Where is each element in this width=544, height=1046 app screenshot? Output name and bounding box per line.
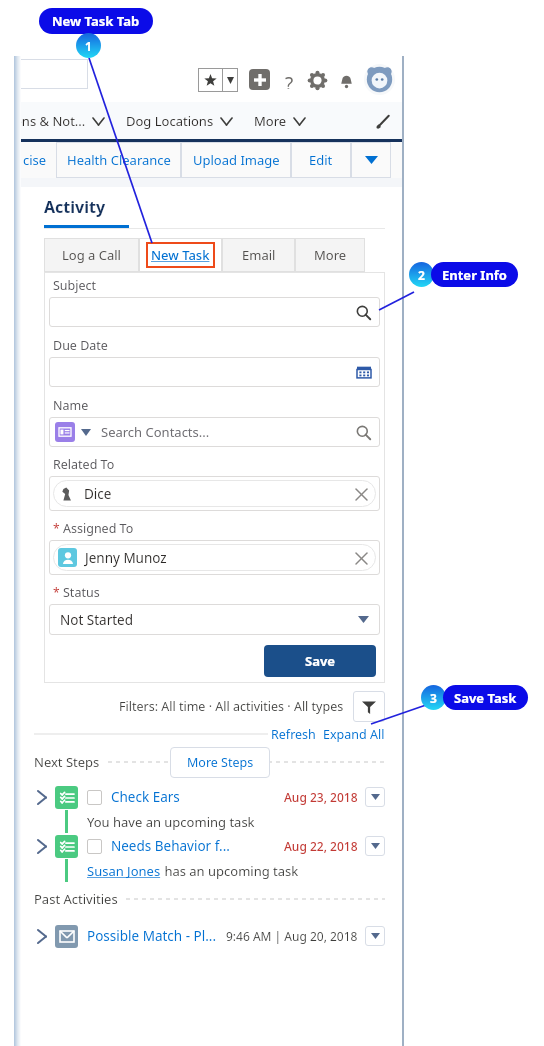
button[interactable]: Enter Info — [442, 262, 507, 287]
staticText: Next Steps — [34, 753, 100, 771]
staticText: Aug 22, 2018 — [284, 838, 358, 854]
staticText: Not Started — [60, 611, 134, 629]
button[interactable]: Dog Locations — [126, 112, 232, 130]
button[interactable]: Jenny Munoz — [58, 544, 376, 571]
button[interactable]: Email — [222, 238, 295, 272]
button[interactable]: Row actions — [365, 787, 385, 807]
staticText: * — [53, 584, 63, 600]
button[interactable]: Search Contacts... — [49, 417, 380, 447]
staticText: Upload Image — [193, 151, 280, 169]
button[interactable]: Add — [249, 69, 270, 90]
button[interactable]: Notifications — [337, 71, 355, 89]
button[interactable]: Setup — [308, 71, 326, 89]
button[interactable]: Expand All — [323, 726, 385, 743]
button[interactable]: Health Clearance — [56, 142, 181, 178]
button[interactable]: Complete task — [87, 790, 102, 805]
staticText: ons & Not... — [14, 112, 86, 130]
staticText: Search Contacts... — [101, 423, 210, 441]
button[interactable]: Upload Image — [181, 142, 291, 178]
staticText: Assigned To — [63, 520, 134, 537]
staticText: Save Task — [454, 689, 517, 707]
staticText: Log a Call — [62, 246, 121, 264]
button[interactable]: Filters: All time · All activities · All… — [119, 698, 344, 715]
staticText: 3 — [430, 690, 437, 706]
button[interactable]: Search — [14, 59, 88, 89]
button[interactable]: New Task — [139, 238, 222, 272]
staticText: cise — [23, 151, 47, 169]
button[interactable]: Remove Jenny Munoz — [350, 547, 372, 569]
button[interactable]: Row actions — [365, 926, 385, 946]
staticText: You have an upcoming task — [87, 813, 255, 831]
staticText: 1 — [85, 38, 92, 54]
staticText: Email — [242, 246, 276, 264]
button[interactable]: Expand — [34, 928, 50, 944]
staticText: Name — [53, 397, 89, 414]
staticText: Health Clearance — [67, 151, 171, 169]
staticText: Due Date — [53, 337, 108, 354]
button[interactable]: Row actions — [365, 836, 385, 856]
button[interactable]: More Steps — [170, 747, 270, 778]
button[interactable]: Remove Dice — [350, 483, 372, 505]
staticText: has an upcoming task — [161, 862, 299, 880]
staticText: Past Activities — [34, 890, 118, 908]
staticText: 2 — [418, 267, 425, 283]
button[interactable]: Activity — [44, 196, 106, 218]
button[interactable]: Not Started — [49, 604, 380, 635]
staticText: ? — [285, 71, 294, 89]
button[interactable]: Needs Behavior f... — [111, 837, 230, 855]
button[interactable]: Possible Match - Pl... — [87, 927, 217, 945]
button[interactable]: Expand — [34, 833, 385, 859]
staticText: Dice — [84, 485, 112, 503]
staticText: New Task — [151, 246, 210, 264]
button[interactable]: More — [254, 112, 305, 130]
button[interactable]: Edit page — [373, 111, 393, 131]
staticText: More — [314, 246, 347, 264]
staticText: Related To — [53, 456, 115, 473]
button[interactable]: Profile — [364, 64, 395, 95]
staticText: More — [254, 112, 287, 130]
staticText: * — [53, 520, 63, 536]
button[interactable]: ons & Not... — [14, 112, 104, 130]
staticText: Subject — [53, 277, 97, 294]
button[interactable]: Expand — [34, 789, 50, 805]
button[interactable]: Refresh — [271, 726, 316, 743]
button[interactable]: Help — [280, 71, 298, 89]
staticText: More Steps — [187, 754, 254, 771]
button[interactable] — [49, 357, 380, 387]
button[interactable]: New Task Tab — [52, 8, 140, 34]
button[interactable]: Edit — [291, 142, 351, 178]
button[interactable]: Log a Call — [44, 238, 139, 272]
staticText: Status — [63, 584, 100, 601]
button[interactable]: Expand — [34, 922, 385, 950]
button[interactable]: Save — [264, 645, 376, 677]
staticText: Save — [305, 652, 336, 670]
button[interactable]: Expand — [34, 784, 385, 810]
button[interactable]: Dice — [58, 480, 376, 507]
staticText: Edit — [309, 151, 333, 169]
button[interactable]: More actions — [351, 142, 391, 178]
button[interactable]: More — [295, 238, 365, 272]
button[interactable]: Complete task — [87, 839, 102, 854]
button[interactable]: Check Ears — [111, 788, 180, 806]
button[interactable]: Favorites — [198, 68, 238, 92]
button[interactable] — [49, 297, 380, 327]
button[interactable]: Save Task — [454, 685, 517, 710]
staticText: Enter Info — [442, 266, 507, 284]
staticText: Jenny Munoz — [85, 549, 167, 567]
button[interactable]: Susan Jones — [87, 862, 161, 880]
staticText: Aug 23, 2018 — [284, 789, 358, 805]
button[interactable]: Expand — [34, 838, 50, 854]
button[interactable]: cise — [14, 142, 56, 178]
button[interactable]: Filter — [353, 691, 385, 722]
staticText: Dog Locations — [126, 112, 214, 130]
staticText: New Task Tab — [52, 12, 140, 30]
staticText: 9:46 AM | Aug 20, 2018 — [226, 928, 358, 944]
